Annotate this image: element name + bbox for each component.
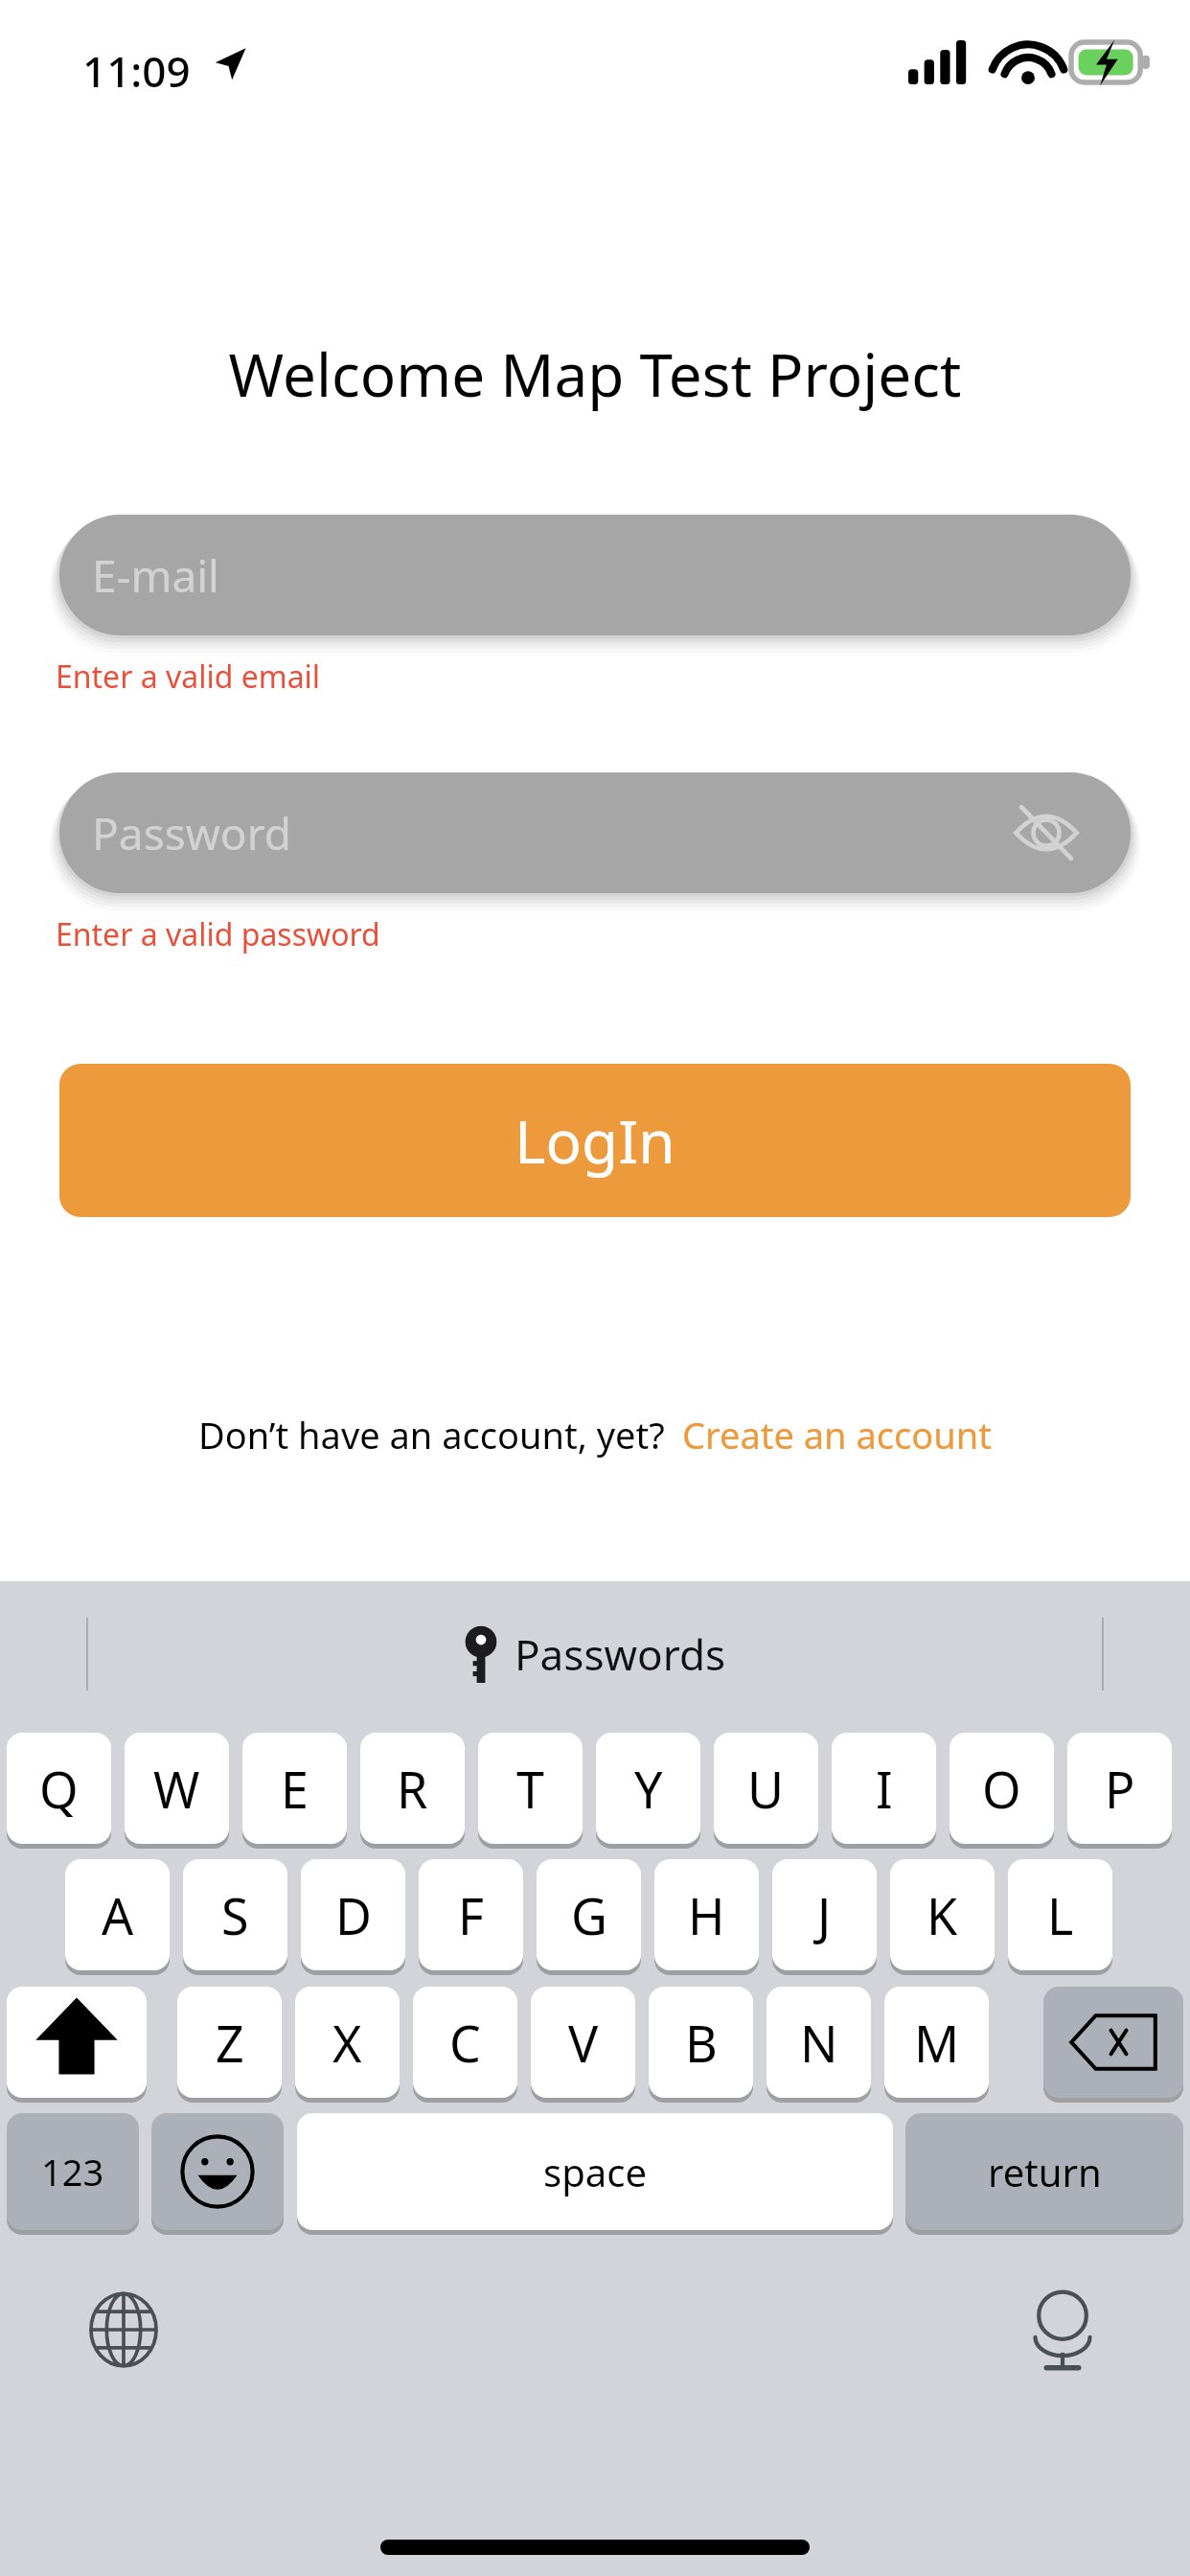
button[interactable]: H [654,1859,759,1970]
staticText: W [153,1755,200,1823]
staticText: E [281,1755,309,1823]
staticText: LogIn [515,1100,675,1181]
button[interactable]: E [242,1733,347,1844]
button[interactable]: 123 [7,2113,139,2230]
button[interactable]: J [772,1859,877,1970]
button[interactable]: Passwords [0,1581,1190,1727]
staticText: X [332,2009,362,2077]
staticText: C [449,2009,481,2077]
staticText: A [102,1881,134,1949]
button[interactable]: Dictation [1033,2288,1092,2373]
button[interactable]: P [1067,1733,1172,1844]
staticText: M [914,2009,960,2077]
staticText: Don’t have an account, yet? [198,1410,665,1460]
button[interactable]: Q [7,1733,111,1844]
button[interactable]: G [537,1859,641,1970]
button[interactable]: O [950,1733,1054,1844]
button[interactable]: Shift [7,1987,147,2098]
staticText: H [688,1881,725,1949]
staticText: 11:09 [82,42,191,100]
staticText: D [335,1881,372,1949]
button[interactable]: D [301,1859,405,1970]
staticText: return [988,2146,1102,2197]
button[interactable]: Z [177,1987,282,2098]
staticText: Welcome Map Test Project [0,333,1190,414]
button[interactable]: Y [596,1733,700,1844]
button[interactable]: B [649,1987,753,2098]
staticText: N [800,2009,838,2077]
button[interactable]: space [297,2113,893,2230]
button[interactable]: Password [59,772,1131,893]
staticText: R [397,1755,428,1823]
button[interactable]: E-mail [59,515,1131,635]
button[interactable]: Emoji [151,2113,284,2230]
staticText: 123 [41,2147,104,2196]
staticText: L [1047,1881,1074,1949]
staticText: J [817,1881,832,1949]
button[interactable]: C [413,1987,517,2098]
staticText: V [568,2009,599,2077]
button[interactable]: L [1008,1859,1112,1970]
button[interactable]: K [890,1859,995,1970]
button[interactable]: Show password [1012,798,1081,867]
button[interactable]: Change keyboard [88,2290,159,2369]
button[interactable]: Backspace [1043,1987,1183,2098]
button[interactable]: R [360,1733,465,1844]
staticText: O [982,1755,1021,1823]
staticText: Q [39,1755,79,1823]
staticText: F [458,1881,484,1949]
staticText: Y [634,1755,663,1823]
staticText: Enter a valid email [56,655,321,698]
staticText: E-mail [92,545,219,606]
button[interactable]: M [884,1987,989,2098]
staticText: P [1105,1755,1135,1823]
staticText: U [747,1755,785,1823]
staticText: S [221,1881,249,1949]
button[interactable]: F [419,1859,523,1970]
staticText: K [927,1881,958,1949]
button[interactable]: W [125,1733,229,1844]
staticText: Passwords [515,1625,726,1683]
staticText: Create an account [682,1410,992,1460]
button[interactable]: U [714,1733,818,1844]
staticText: T [516,1755,544,1823]
button[interactable]: X [295,1987,400,2098]
button[interactable]: N [767,1987,871,2098]
staticText: Enter a valid password [56,913,380,955]
button[interactable]: return [905,2113,1183,2230]
staticText: space [543,2146,647,2197]
staticText: I [876,1755,893,1823]
staticText: G [571,1881,607,1949]
staticText: Z [216,2009,244,2077]
button[interactable]: LogIn [59,1064,1131,1217]
button[interactable]: V [531,1987,635,2098]
button[interactable]: S [183,1859,287,1970]
button[interactable]: Create an account [682,1410,992,1460]
button[interactable]: T [478,1733,583,1844]
button[interactable]: I [832,1733,936,1844]
button[interactable]: A [65,1859,170,1970]
staticText: Password [92,803,292,863]
staticText: B [685,2009,718,2077]
